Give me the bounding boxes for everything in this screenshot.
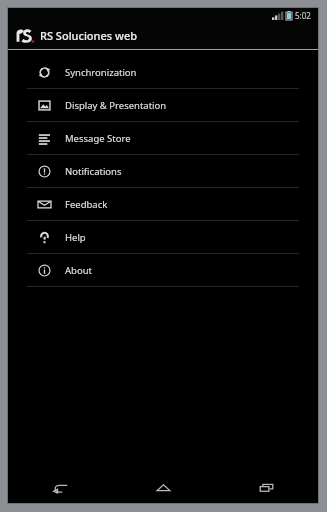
- button[interactable]: Display & Presentation: [8, 89, 318, 121]
- button[interactable]: Back: [8, 471, 112, 503]
- button[interactable]: Home: [112, 471, 215, 503]
- button[interactable]: Feedback: [8, 188, 318, 220]
- staticText: Message Store: [65, 132, 131, 145]
- button[interactable]: RS Soluciones web: [8, 22, 318, 49]
- button[interactable]: Recent apps: [215, 471, 318, 503]
- staticText: Notifications: [65, 165, 122, 178]
- staticText: Display & Presentation: [65, 99, 167, 112]
- button[interactable]: About: [8, 254, 318, 286]
- button[interactable]: Synchronization: [8, 56, 318, 88]
- staticText: Feedback: [65, 198, 108, 211]
- staticText: Synchronization: [65, 66, 137, 79]
- button[interactable]: Notifications: [8, 155, 318, 187]
- staticText: Help: [65, 231, 86, 244]
- staticText: About: [65, 264, 92, 277]
- staticText: RS Soluciones web: [40, 28, 138, 43]
- button[interactable]: Message Store: [8, 122, 318, 154]
- staticText: 5:02: [295, 10, 311, 21]
- button[interactable]: Help: [8, 221, 318, 253]
